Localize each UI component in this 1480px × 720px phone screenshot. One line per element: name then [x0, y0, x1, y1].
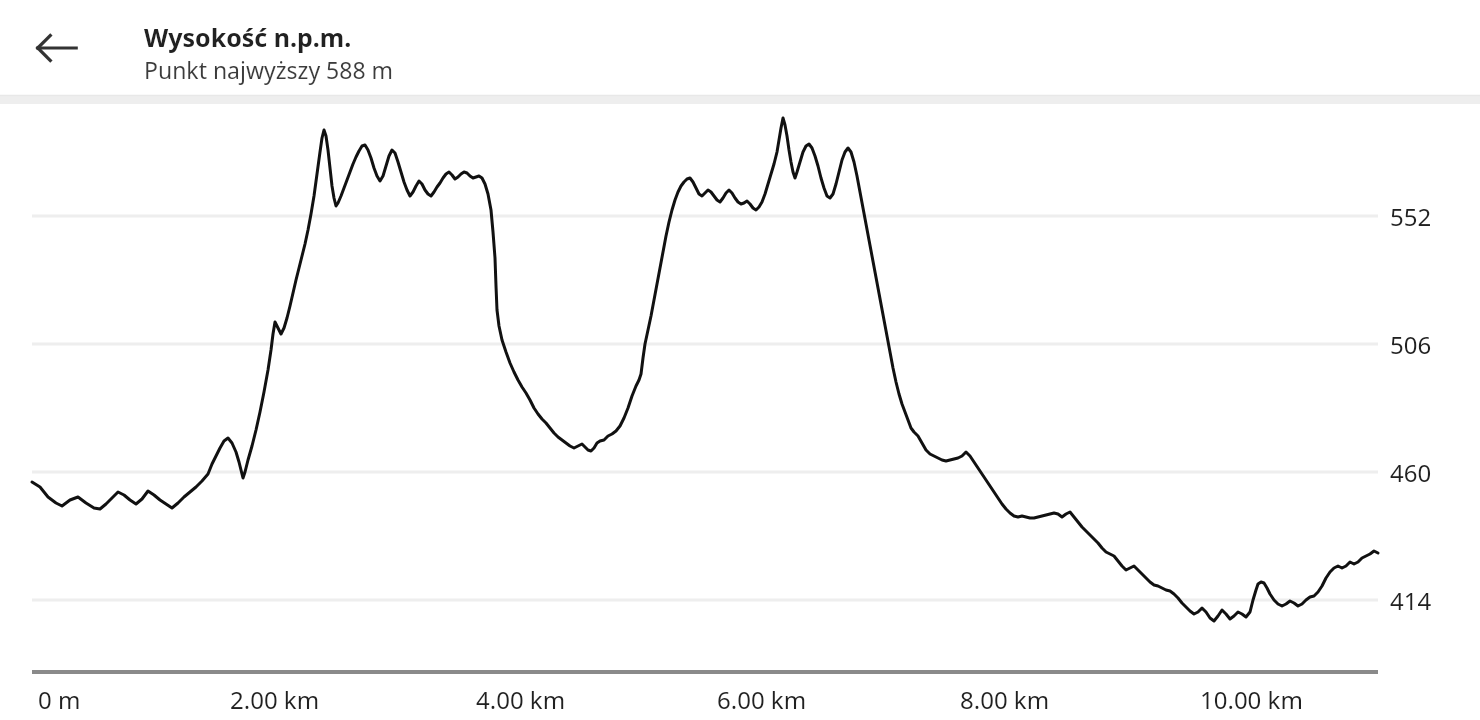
button[interactable]: Back: [33, 24, 81, 72]
